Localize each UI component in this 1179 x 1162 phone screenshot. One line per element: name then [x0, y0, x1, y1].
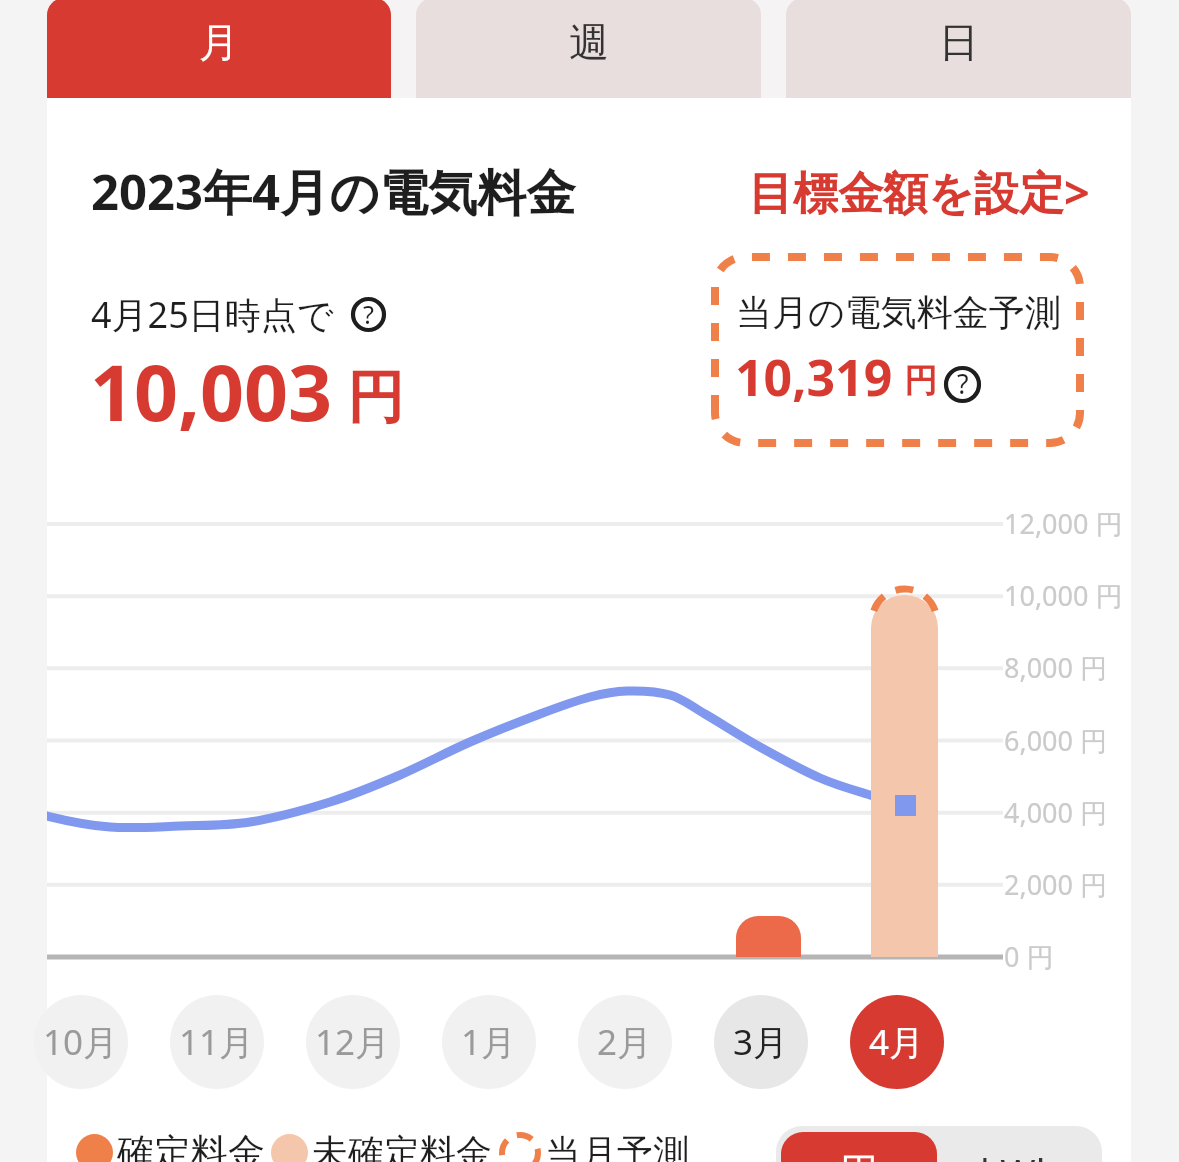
- staticText: 当月予測: [545, 1130, 689, 1162]
- button[interactable]: 月: [47, 0, 391, 98]
- button[interactable]: 3月: [714, 995, 808, 1089]
- staticText: 2月: [597, 1018, 653, 1066]
- staticText: ?: [363, 297, 374, 331]
- staticText: 12月: [315, 1018, 391, 1066]
- staticText: 円: [347, 362, 404, 434]
- staticText: 10,000 円: [1004, 577, 1123, 614]
- button[interactable]: 日: [786, 0, 1131, 98]
- button[interactable]: 目標金額を設定>: [748, 161, 1090, 222]
- button[interactable]: kWh: [942, 1132, 1098, 1162]
- staticText: 週: [569, 17, 609, 67]
- staticText: 円: [840, 1148, 878, 1162]
- staticText: 目標金額を設定>: [748, 161, 1090, 222]
- staticText: 10,003: [90, 339, 333, 444]
- staticText: 3月: [733, 1018, 789, 1066]
- button[interactable]: 10月: [34, 995, 128, 1089]
- staticText: 4月: [869, 1018, 925, 1066]
- button[interactable]: 当月の電気料金予測: [710, 252, 1085, 448]
- staticText: 1月: [461, 1018, 517, 1066]
- staticText: ?: [957, 366, 969, 402]
- staticText: 2,000 円: [1004, 866, 1108, 903]
- button[interactable]: 11月: [170, 995, 264, 1089]
- staticText: 10,319: [735, 343, 893, 411]
- button[interactable]: 1月: [442, 995, 536, 1089]
- staticText: 4,000 円: [1004, 794, 1108, 831]
- staticText: 8,000 円: [1004, 649, 1108, 686]
- button[interactable]: 円: [781, 1132, 937, 1162]
- staticText: 4月25日時点で: [91, 290, 334, 339]
- staticText: kWh: [980, 1146, 1060, 1162]
- staticText: 10月: [43, 1018, 119, 1066]
- button[interactable]: 週: [416, 0, 761, 98]
- staticText: 12,000 円: [1004, 505, 1123, 542]
- staticText: 11月: [179, 1018, 255, 1066]
- other: Help: [944, 366, 981, 403]
- other: Help: [351, 297, 386, 332]
- staticText: 2023年4月の電気料金: [91, 158, 576, 225]
- staticText: 6,000 円: [1004, 722, 1108, 759]
- button[interactable]: 4月: [850, 995, 944, 1089]
- staticText: 円: [904, 360, 937, 402]
- button[interactable]: 2月: [578, 995, 672, 1089]
- staticText: 確定料金: [117, 1129, 265, 1162]
- staticText: 月: [199, 17, 239, 67]
- staticText: 0 円: [1004, 938, 1054, 975]
- staticText: 当月の電気料金予測: [736, 290, 1061, 335]
- button[interactable]: 12月: [306, 995, 400, 1089]
- staticText: 未確定料金: [312, 1130, 492, 1162]
- staticText: 日: [939, 17, 979, 67]
